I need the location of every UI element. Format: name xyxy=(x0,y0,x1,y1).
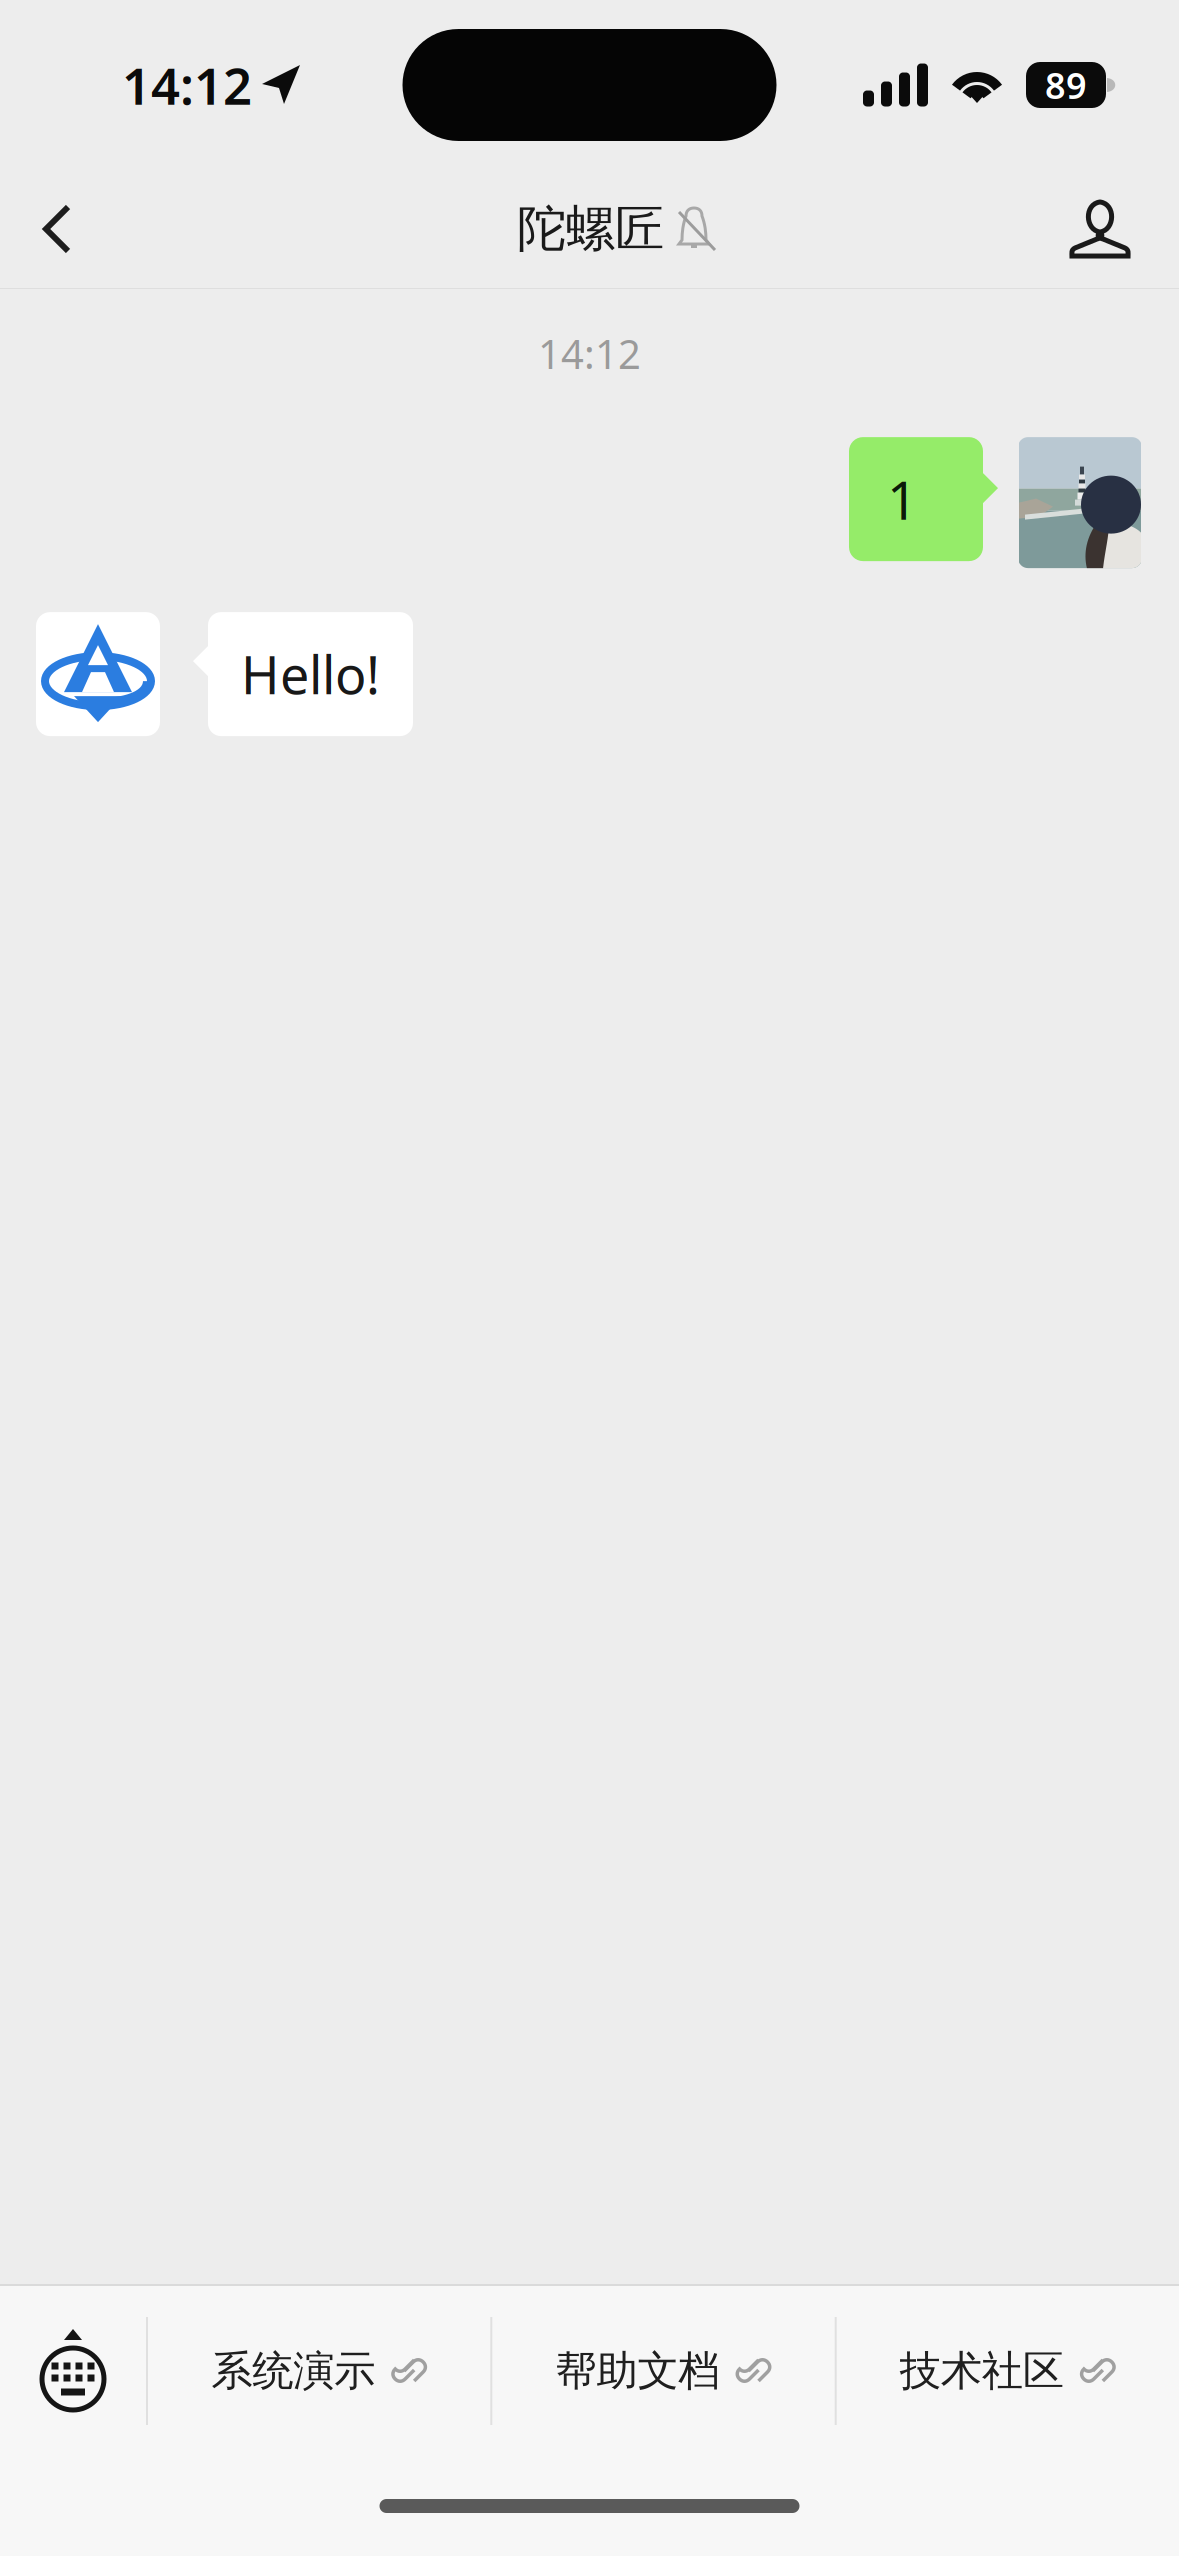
button[interactable]: 技术社区 xyxy=(837,2286,1179,2456)
staticText: Hello! xyxy=(241,640,380,709)
button[interactable]: Keyboard xyxy=(0,2286,146,2456)
staticText: 89 xyxy=(1045,61,1087,109)
staticText: 14:12 xyxy=(122,51,252,119)
staticText: 技术社区 xyxy=(900,2346,1064,2396)
staticText: 陀螺匠 xyxy=(517,199,664,259)
button[interactable]: Back xyxy=(0,174,102,284)
staticText: 帮助文档 xyxy=(555,2346,719,2396)
button[interactable]: 帮助文档 xyxy=(492,2286,835,2456)
staticText: 系统演示 xyxy=(211,2346,375,2396)
button[interactable]: Contact info xyxy=(1041,174,1179,284)
staticText: 14:12 xyxy=(538,327,641,380)
staticText: 1 xyxy=(887,464,918,534)
button[interactable]: 系统演示 xyxy=(148,2286,490,2456)
